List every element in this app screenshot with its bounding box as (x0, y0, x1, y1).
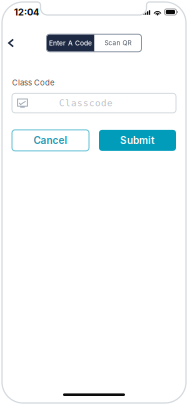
staticText: Cancel (33, 134, 67, 146)
button[interactable]: Enter A Code (46, 34, 94, 52)
staticText: Submit (120, 134, 155, 146)
staticText: Enter A Code (49, 39, 92, 47)
staticText: Classcode (59, 98, 113, 108)
staticText: Scan QR (104, 39, 131, 47)
button[interactable]: Back (2, 34, 20, 52)
staticText: Class Code (12, 78, 55, 87)
button[interactable]: Cancel (12, 130, 89, 151)
button[interactable]: Submit (99, 130, 176, 151)
button[interactable]: Scan QR (94, 34, 141, 52)
staticText: 12:04 (14, 6, 39, 18)
